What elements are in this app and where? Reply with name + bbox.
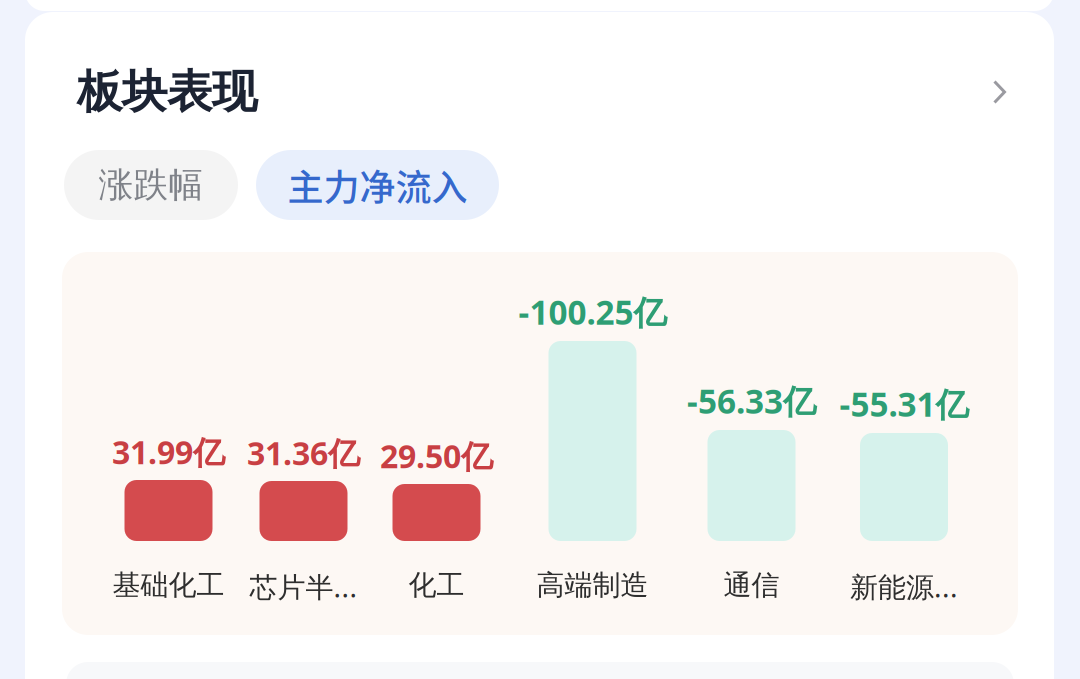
button[interactable]: 板块表现: [25, 68, 1006, 116]
staticText: 化工: [408, 568, 464, 602]
staticText: -56.33亿: [687, 379, 816, 423]
button[interactable]: -100.25亿: [518, 252, 667, 635]
button[interactable]: 主力净流入: [256, 150, 499, 220]
staticText: 主力净流入: [287, 159, 467, 211]
button[interactable]: 31.36亿: [247, 252, 360, 635]
button[interactable]: 31.99亿: [112, 252, 225, 635]
staticText: 通信: [723, 568, 779, 602]
staticText: -55.31亿: [839, 382, 968, 426]
button[interactable]: 涨跌幅: [64, 150, 238, 220]
button[interactable]: -56.33亿: [687, 252, 816, 635]
staticText: 31.36亿: [247, 431, 360, 474]
staticText: 高端制造: [536, 568, 648, 602]
staticText: 31.99亿: [112, 430, 225, 473]
button[interactable]: -55.31亿: [839, 252, 969, 635]
staticText: 29.50亿: [380, 434, 493, 477]
button[interactable]: 29.50亿: [381, 252, 492, 635]
staticText: -100.25亿: [518, 290, 666, 334]
staticText: 涨跌幅: [98, 164, 203, 206]
staticText: 基础化工: [112, 568, 224, 602]
staticText: 板块表现: [77, 64, 257, 120]
staticText: 芯片半...: [249, 568, 357, 605]
staticText: 新能源...: [850, 568, 958, 605]
